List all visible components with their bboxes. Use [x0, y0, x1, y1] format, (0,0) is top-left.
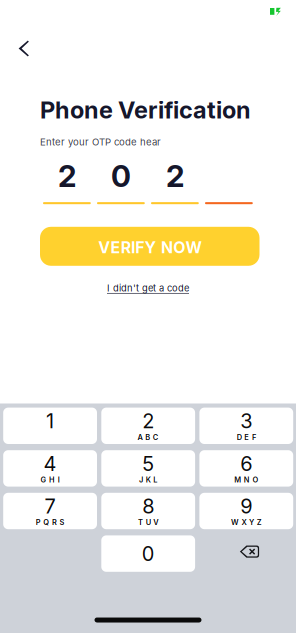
button[interactable]: 4 — [3, 450, 97, 487]
staticText: GHI — [40, 475, 60, 484]
staticText: TUV — [138, 518, 158, 527]
staticText: 4 — [44, 451, 57, 476]
staticText: 5 — [142, 451, 154, 476]
staticText: 3 — [240, 409, 252, 433]
button[interactable]: 3 — [199, 408, 293, 444]
button[interactable]: 0 — [101, 535, 195, 572]
button[interactable]: 5 — [101, 450, 195, 487]
button[interactable]: 9 — [199, 493, 293, 529]
staticText: JKL — [139, 475, 157, 484]
staticText: 8 — [142, 494, 154, 518]
staticText: VERIFY NOW — [98, 238, 201, 257]
staticText: PQRS — [36, 518, 64, 527]
button[interactable]: 6 — [199, 450, 293, 487]
button[interactable]: VERIFY NOW — [40, 227, 259, 266]
staticText: 6 — [240, 451, 252, 476]
staticText: MNO — [234, 475, 258, 484]
button[interactable]: 7 — [3, 493, 97, 529]
staticText: DEF — [237, 433, 256, 442]
staticText: Enter your OTP code hear — [40, 136, 161, 148]
button[interactable] — [9, 40, 39, 56]
button[interactable]: I didn't get a code — [0, 280, 296, 296]
button[interactable]: 1 — [3, 408, 97, 444]
staticText: I didn't get a code — [107, 282, 189, 294]
button[interactable]: 2 — [101, 408, 195, 444]
staticText: 0 — [111, 158, 131, 194]
staticText: 2 — [142, 409, 154, 433]
staticText: 2 — [166, 158, 184, 194]
staticText: Phone Verification — [40, 96, 251, 124]
staticText: 2 — [58, 158, 76, 194]
button[interactable]: 8 — [101, 493, 195, 529]
button[interactable] — [199, 535, 293, 572]
staticText: 7 — [45, 494, 56, 518]
staticText: WXYZ — [231, 518, 262, 527]
staticText: 1 — [46, 409, 54, 433]
staticText: 9 — [240, 494, 252, 518]
staticText: 0 — [142, 541, 155, 566]
staticText: ABC — [138, 433, 159, 442]
